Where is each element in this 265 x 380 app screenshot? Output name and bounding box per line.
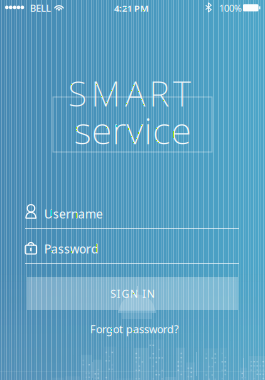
button[interactable]: Forgot password? xyxy=(86,319,183,339)
staticText: service xyxy=(74,105,191,155)
staticText: SIGN IN xyxy=(110,286,155,301)
staticText: Password xyxy=(44,241,98,257)
button[interactable]: SIGN IN xyxy=(27,277,238,310)
staticText: 100% xyxy=(219,2,242,14)
staticText: 4:21 PM xyxy=(114,2,149,14)
staticText: BELL xyxy=(30,2,51,14)
staticText: Forgot password? xyxy=(90,322,179,336)
button[interactable]: Username xyxy=(25,204,239,230)
staticText: SMART xyxy=(68,70,191,116)
button[interactable]: Password xyxy=(25,239,239,265)
staticText: Username xyxy=(44,206,103,222)
